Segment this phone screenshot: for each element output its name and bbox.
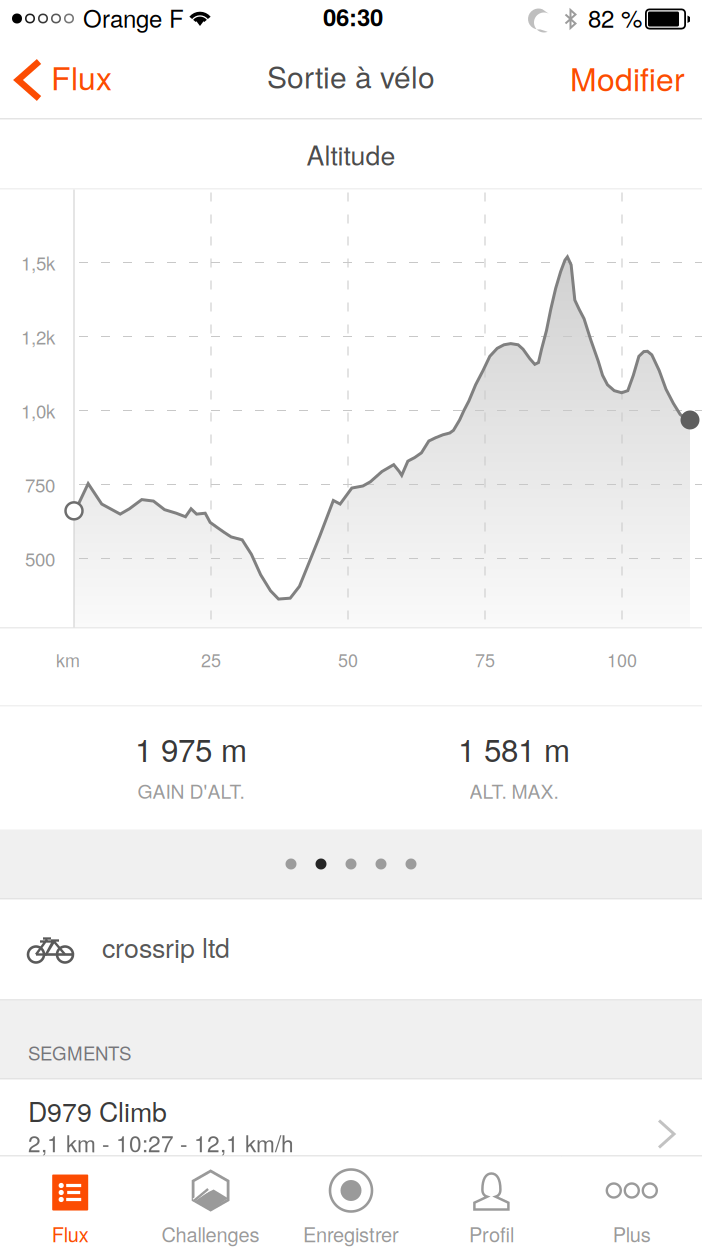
button[interactable]: Modifier: [0, 43, 140, 118]
staticText: 1 975 m: [135, 726, 247, 771]
staticText: Flux: [51, 54, 112, 99]
button[interactable]: Profil: [421, 1156, 562, 1248]
staticText: 750: [25, 471, 55, 498]
staticText: Orange F: [83, 0, 184, 35]
staticText: 50: [338, 647, 358, 672]
staticText: D979 Climb: [28, 1091, 167, 1130]
staticText: 1,2k: [21, 323, 55, 350]
staticText: 1 581 m: [458, 726, 570, 771]
staticText: GAIN D'ALT.: [137, 777, 244, 804]
staticText: 1,0k: [21, 397, 55, 424]
staticText: 06:30: [323, 0, 383, 34]
staticText: 1,5k: [21, 249, 55, 276]
staticText: Profil: [469, 1219, 514, 1248]
staticText: Challenges: [162, 1219, 260, 1248]
staticText: 25: [201, 647, 221, 672]
staticText: 100: [607, 647, 637, 672]
staticText: km: [56, 647, 80, 672]
button[interactable]: Flux: [0, 1156, 140, 1248]
button[interactable]: Flux: [0, 43, 125, 118]
staticText: Plus: [613, 1219, 651, 1248]
staticText: Flux: [52, 1219, 89, 1248]
button[interactable]: Challenges: [140, 1156, 281, 1248]
staticText: Altitude: [306, 135, 395, 173]
staticText: 75: [475, 647, 495, 672]
staticText: 500: [25, 545, 55, 572]
button[interactable]: crossrip ltd: [0, 899, 702, 999]
staticText: 82 %: [588, 0, 642, 35]
staticText: crossrip ltd: [102, 927, 230, 966]
button[interactable]: Plus: [562, 1156, 702, 1248]
button[interactable]: D979 Climb: [0, 1079, 702, 1189]
staticText: Sortie à vélo: [267, 54, 435, 97]
button[interactable]: Enregistrer: [281, 1156, 421, 1248]
staticText: ALT. MAX.: [469, 777, 558, 804]
staticText: Modifier: [570, 55, 685, 100]
staticText: Enregistrer: [303, 1219, 399, 1248]
staticText: 2,1 km - 10:27 - 12,1 km/h: [28, 1126, 294, 1159]
staticText: SEGMENTS: [28, 1039, 131, 1066]
